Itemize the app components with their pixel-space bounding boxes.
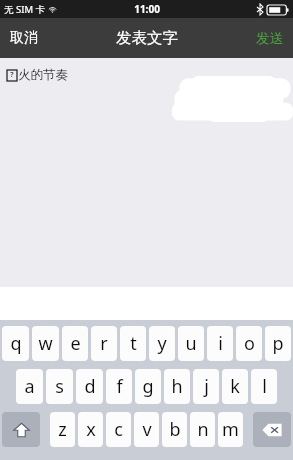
staticText: q xyxy=(10,331,22,356)
button[interactable]: t xyxy=(120,326,146,361)
staticText: k xyxy=(230,374,240,399)
staticText: d xyxy=(84,374,96,399)
staticText: v xyxy=(142,417,152,442)
button[interactable]: x xyxy=(78,412,103,447)
staticText: p xyxy=(272,331,284,356)
button[interactable]: a xyxy=(16,369,43,404)
staticText: 11:00 xyxy=(134,2,160,16)
button[interactable]: v xyxy=(134,412,159,447)
staticText: j xyxy=(204,374,209,399)
staticText: o xyxy=(244,331,255,356)
staticText: x xyxy=(86,417,96,442)
button[interactable]: n xyxy=(190,412,215,447)
button[interactable]: p xyxy=(265,326,291,361)
staticText: 取消 xyxy=(10,29,38,47)
staticText: c xyxy=(114,417,123,442)
staticText: r xyxy=(100,331,108,356)
staticText: e xyxy=(70,331,81,356)
staticText: f xyxy=(116,374,123,399)
staticText: 火的节奏 xyxy=(18,67,68,83)
staticText: g xyxy=(142,374,154,399)
button[interactable]: Shift xyxy=(2,412,40,447)
staticText: 发送 xyxy=(256,30,283,47)
button[interactable]: o xyxy=(236,326,262,361)
button[interactable]: l xyxy=(251,369,277,404)
staticText: a xyxy=(24,374,35,399)
staticText: s xyxy=(55,374,64,399)
staticText: i xyxy=(218,331,223,356)
button[interactable]: 取消 xyxy=(0,21,48,55)
staticText: m xyxy=(222,417,239,442)
button[interactable]: d xyxy=(76,369,103,404)
button[interactable]: f xyxy=(106,369,132,404)
button[interactable]: m xyxy=(218,412,243,447)
staticText: ? xyxy=(10,70,14,80)
staticText: y xyxy=(157,331,167,356)
button[interactable]: 发送 xyxy=(246,22,293,55)
staticText: 发表文字 xyxy=(116,28,178,48)
staticText: u xyxy=(185,331,197,356)
staticText: 无 SIM 卡 xyxy=(4,3,45,16)
button[interactable]: k xyxy=(222,369,248,404)
staticText: t xyxy=(130,331,137,356)
staticText: n xyxy=(197,417,209,442)
button[interactable]: w xyxy=(32,326,59,361)
button[interactable]: ? xyxy=(0,58,293,287)
button[interactable]: q xyxy=(2,326,29,361)
button[interactable]: y xyxy=(149,326,175,361)
button[interactable]: h xyxy=(164,369,190,404)
button[interactable]: u xyxy=(178,326,204,361)
button[interactable]: b xyxy=(162,412,187,447)
button[interactable]: c xyxy=(106,412,131,447)
button[interactable]: z xyxy=(50,412,75,447)
button[interactable]: j xyxy=(193,369,219,404)
button[interactable]: i xyxy=(207,326,233,361)
staticText: z xyxy=(58,417,67,442)
staticText: h xyxy=(171,374,183,399)
button[interactable]: e xyxy=(62,326,88,361)
button[interactable]: Backspace xyxy=(253,412,291,447)
button[interactable]: g xyxy=(135,369,161,404)
staticText: b xyxy=(169,417,181,442)
button[interactable]: s xyxy=(46,369,73,404)
staticText: l xyxy=(262,374,267,399)
button[interactable]: r xyxy=(91,326,117,361)
staticText: w xyxy=(38,331,53,356)
